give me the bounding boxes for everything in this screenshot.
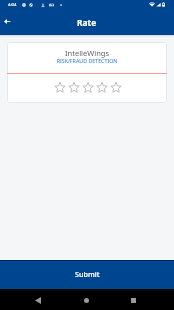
button[interactable]: Recent apps: [125, 292, 141, 308]
staticText: Rate: [77, 17, 97, 28]
staticText: Submit: [75, 269, 100, 279]
button[interactable]: Rate 4 star: [95, 82, 109, 93]
button[interactable]: Submit: [0, 260, 174, 289]
button[interactable]: Back: [30, 292, 46, 308]
button[interactable]: Rate 2 star: [67, 82, 81, 93]
button[interactable]: Rate 5 star: [109, 82, 123, 93]
staticText: IntelleWings: [7, 48, 167, 58]
button[interactable]: Rate 3 star: [81, 82, 95, 93]
staticText: RISK/FRAUD DETECTION: [7, 57, 167, 64]
button[interactable]: Navigate up: [0, 10, 18, 32]
staticText: 4:04: [8, 2, 17, 8]
button[interactable]: Rate 1 star: [53, 82, 67, 93]
button[interactable]: Home: [78, 292, 94, 308]
